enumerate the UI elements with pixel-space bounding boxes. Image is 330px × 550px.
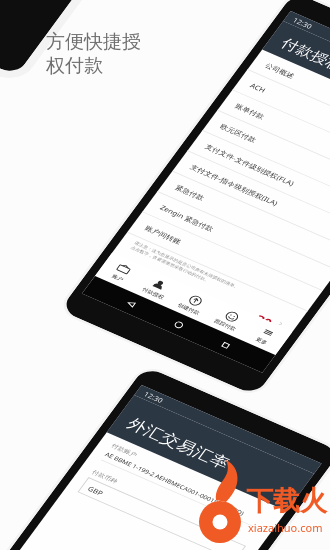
button[interactable]: 紧急付款 [169, 176, 330, 265]
staticText: 12:30 [142, 389, 166, 405]
staticText: 付款账户 [110, 442, 139, 459]
button[interactable]: 账单付款 [229, 95, 330, 184]
button[interactable]: 付款授权 [131, 268, 183, 307]
staticText: GBP [86, 484, 105, 497]
staticText: 跟踪付款 [213, 318, 238, 332]
button[interactable]: 创建付款 [166, 284, 219, 323]
staticText: 付款授权 [277, 35, 330, 75]
staticText: 支付文件-指令级别授权(ILA) [188, 162, 281, 207]
staticText: 欧元区付款 [218, 122, 258, 144]
button[interactable]: 支付文件-指令级别授权(ILA) [184, 156, 330, 245]
staticText: 付款币种 [90, 468, 119, 485]
other: Back [124, 298, 139, 310]
other: Home [171, 319, 186, 331]
staticText: 请注意：这为您显示的是贵公司所有未清授权的清单。 点击数字，查看需要您采取行动的… [129, 240, 240, 295]
button[interactable]: 账户间转账 [139, 217, 311, 306]
staticText: 创建付款 [176, 302, 201, 316]
button[interactable]: Zengin 紧急付款 [154, 197, 326, 285]
staticText: 支付文件-文件级别授权(FLA) [203, 142, 296, 187]
button[interactable]: 跟踪付款 [202, 300, 256, 339]
staticText: 下载火 [246, 484, 327, 518]
staticText: 付款授权 [141, 286, 166, 301]
staticText: 账户 [111, 273, 125, 283]
staticText: 更多 [254, 336, 269, 346]
button[interactable]: 公司概述 [259, 54, 330, 143]
staticText: 30 [258, 311, 276, 323]
staticText: 账户间转账 [143, 224, 183, 246]
staticText: xiazaihuo.com [248, 520, 323, 535]
button[interactable]: 支付文件-文件级别授权(FLA) [199, 136, 330, 224]
button[interactable]: ACH [244, 75, 330, 163]
button[interactable]: 30 [123, 252, 285, 327]
staticText: 权付款 [46, 54, 103, 78]
staticText: 账单付款 [233, 102, 266, 121]
button[interactable]: 账户 [95, 253, 148, 291]
button[interactable]: 更多 [239, 316, 292, 355]
other: Recents [218, 339, 233, 351]
staticText: 外汇交易汇率 [123, 414, 233, 473]
button[interactable]: 欧元区付款 [214, 115, 330, 204]
staticText: ACH [248, 81, 268, 94]
staticText: AE BBME 1-199-2 AEHBMECA001-000199-2 (AE… [103, 451, 246, 518]
staticText: 12:30 [291, 15, 315, 31]
staticText: 紧急付款 [173, 183, 206, 202]
staticText: Zengin 紧急付款 [158, 203, 217, 233]
staticText: 公司概述 [263, 61, 296, 80]
staticText: 方便快捷授 [46, 30, 141, 54]
